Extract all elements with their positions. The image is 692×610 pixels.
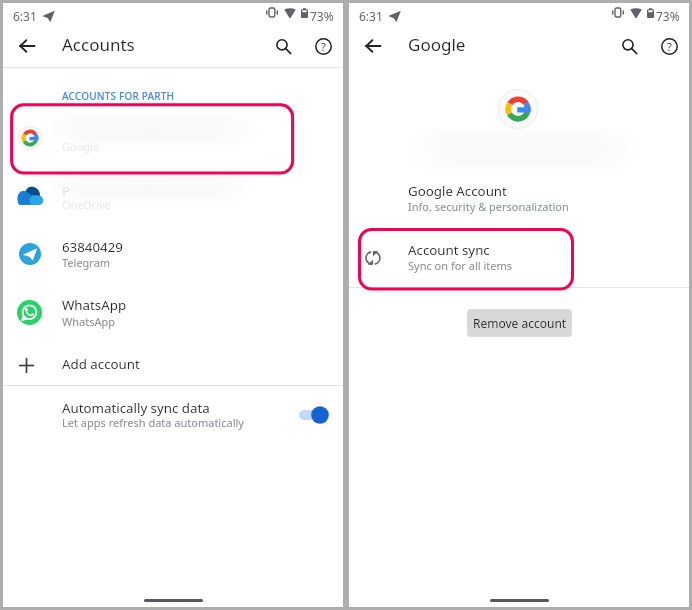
staticText: Automatically sync data: [62, 399, 210, 417]
staticText: 73%: [656, 8, 680, 24]
button[interactable]: Google: [3, 110, 343, 170]
staticText: Remove account: [473, 315, 567, 331]
staticText: Google Account: [408, 182, 507, 200]
staticText: Telegram: [62, 255, 111, 270]
button[interactable]: Google Account: [349, 178, 689, 222]
button[interactable]: WhatsApp: [3, 285, 343, 341]
staticText: 6:31: [359, 8, 383, 24]
staticText: Info, security & personalization: [408, 199, 569, 214]
staticText: WhatsApp: [62, 296, 127, 314]
button[interactable]: Search: [616, 33, 642, 59]
button[interactable]: 63840429: [3, 229, 343, 285]
staticText: 6:31: [13, 8, 37, 24]
button[interactable]: Help: [656, 33, 682, 59]
staticText: 73%: [310, 8, 334, 24]
staticText: OneDrive: [62, 197, 111, 212]
staticText: Google: [62, 139, 100, 154]
staticText: P: [62, 182, 71, 200]
button[interactable]: Search: [270, 33, 296, 59]
button[interactable]: Add account: [3, 343, 343, 387]
button[interactable]: Back: [360, 33, 386, 59]
staticText: Sync on for all items: [408, 258, 513, 273]
button[interactable]: Back: [14, 33, 40, 59]
staticText: Add account: [62, 355, 140, 373]
button[interactable]: Help: [310, 33, 336, 59]
button[interactable]: Automatically sync data: [3, 393, 343, 445]
staticText: Let apps refresh data automatically: [62, 415, 244, 430]
staticText: 63840429: [62, 238, 123, 256]
staticText: ?: [667, 39, 672, 54]
button[interactable]: Account sync: [349, 233, 689, 283]
staticText: ?: [321, 39, 326, 54]
staticText: Google: [408, 33, 466, 56]
button[interactable]: Remove account: [467, 309, 572, 337]
staticText: Accounts: [62, 33, 135, 56]
staticText: Account sync: [408, 241, 490, 259]
button[interactable]: P: [3, 168, 343, 226]
staticText: ACCOUNTS FOR PARTH: [62, 89, 175, 103]
staticText: WhatsApp: [62, 314, 115, 329]
